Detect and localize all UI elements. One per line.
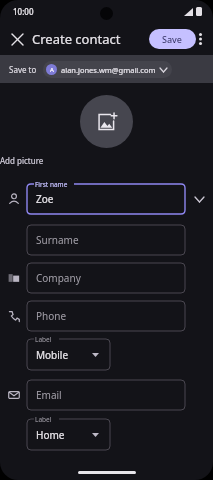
staticText: Save [162, 33, 183, 45]
staticText: Add picture [0, 155, 213, 166]
button[interactable]: Company [27, 263, 185, 293]
button[interactable]: Surname [27, 225, 185, 255]
button[interactable]: Save [149, 29, 196, 49]
staticText: Phone [36, 309, 67, 323]
button[interactable]: A [43, 61, 172, 78]
button[interactable]: Expand name fields [185, 184, 213, 214]
button[interactable]: More options [191, 30, 209, 48]
button[interactable]: Phone [27, 301, 185, 331]
staticText: Save to [9, 64, 37, 75]
staticText: Zoe [36, 192, 54, 206]
staticText: 10:00 [13, 6, 34, 17]
button[interactable]: Add picture [80, 95, 133, 148]
button[interactable]: Close [4, 26, 30, 52]
staticText: Mobile [36, 348, 69, 362]
staticText: alan.jones.wm@gmail.com [61, 65, 156, 75]
staticText: First name [35, 180, 68, 189]
staticText: Label [35, 335, 52, 344]
staticText: Surname [36, 233, 79, 247]
button[interactable]: Email [27, 380, 185, 410]
staticText: Create contact [32, 30, 121, 48]
button[interactable]: First name [27, 184, 185, 214]
button[interactable]: Label [27, 419, 110, 450]
staticText: Label [35, 415, 52, 424]
button[interactable]: Label [27, 339, 110, 370]
staticText: Home [36, 428, 65, 442]
staticText: Company [36, 271, 81, 285]
staticText: A [50, 66, 54, 74]
staticText: Email [36, 388, 62, 402]
